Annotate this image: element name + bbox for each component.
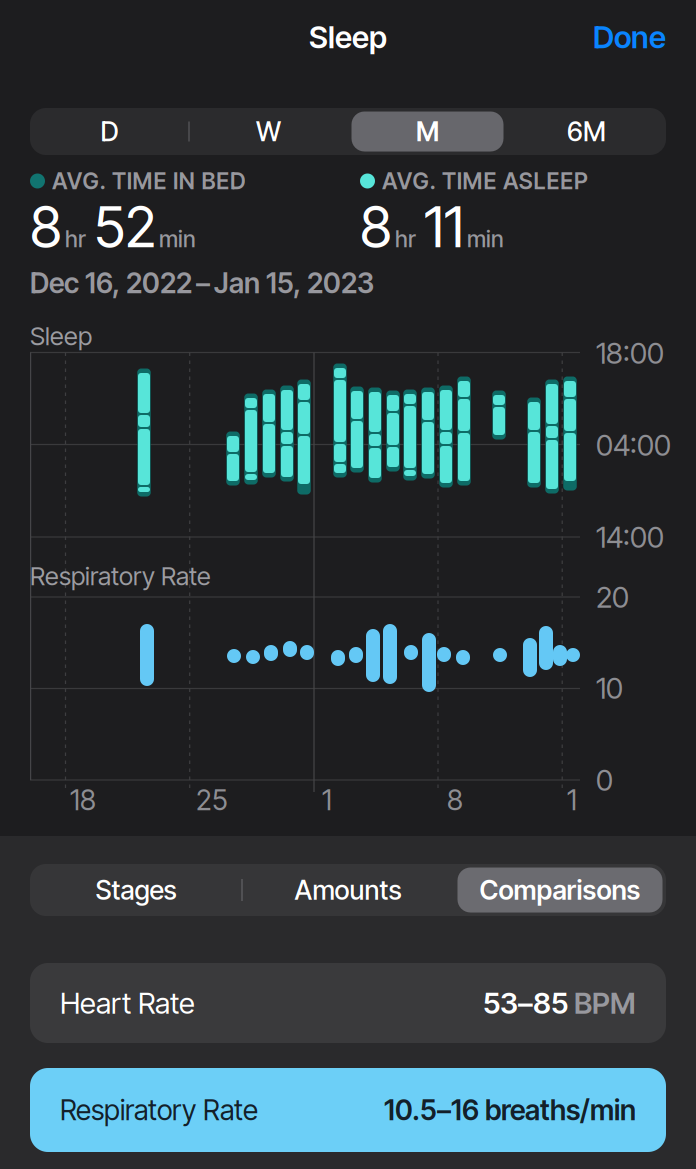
button[interactable]: D xyxy=(32,108,187,154)
button[interactable]: 6M xyxy=(509,108,664,154)
staticText: Done xyxy=(593,19,666,55)
staticText: 10 xyxy=(596,671,623,705)
button[interactable]: Amounts xyxy=(244,865,452,915)
staticText: Heart Rate xyxy=(60,986,195,1020)
staticText: 52 xyxy=(94,194,156,260)
button[interactable]: Heart Rate xyxy=(30,963,666,1043)
staticText: D xyxy=(100,116,118,147)
button[interactable]: Comparisons xyxy=(456,865,664,915)
staticText: 18 xyxy=(70,783,96,816)
button[interactable]: Stages xyxy=(32,865,240,915)
staticText: AVG. TIME ASLEEP xyxy=(382,168,588,194)
button[interactable]: W xyxy=(191,108,346,154)
button[interactable]: Done xyxy=(546,13,666,61)
staticText: 14:00 xyxy=(596,520,664,554)
staticText: 53–85 xyxy=(483,986,568,1020)
button[interactable]: M xyxy=(350,108,505,154)
staticText: BPM xyxy=(568,986,636,1020)
staticText: Sleep xyxy=(30,321,92,351)
staticText: 8 xyxy=(360,194,392,260)
staticText: 0 xyxy=(596,763,613,797)
staticText: 10.5–16 breaths/min xyxy=(384,1093,636,1126)
button[interactable]: Respiratory Rate xyxy=(30,1068,666,1152)
staticText: 1 xyxy=(322,783,332,816)
staticText: hr xyxy=(65,226,86,252)
staticText: M xyxy=(416,116,439,147)
staticText: 8 xyxy=(447,783,463,816)
staticText: Amounts xyxy=(294,874,401,906)
staticText: Comparisons xyxy=(479,874,640,906)
staticText: W xyxy=(256,116,281,147)
staticText: Dec 16, 2022 – Jan 15, 2023 xyxy=(30,266,374,299)
staticText: Sleep xyxy=(309,19,387,55)
staticText: 04:00 xyxy=(596,428,671,462)
staticText: Respiratory Rate xyxy=(30,561,211,591)
staticText: 1 xyxy=(567,783,577,816)
staticText: min xyxy=(467,226,504,252)
staticText: 18:00 xyxy=(596,336,664,370)
staticText: Stages xyxy=(95,874,176,906)
staticText: 11 xyxy=(424,194,464,260)
staticText: 6M xyxy=(567,116,606,147)
staticText: AVG. TIME IN BED xyxy=(52,168,246,194)
staticText: 20 xyxy=(596,580,629,614)
staticText: 8 xyxy=(30,194,62,260)
staticText: min xyxy=(159,226,196,252)
staticText: Respiratory Rate xyxy=(60,1093,258,1126)
staticText: hr xyxy=(395,226,416,252)
staticText: 25 xyxy=(196,783,228,816)
